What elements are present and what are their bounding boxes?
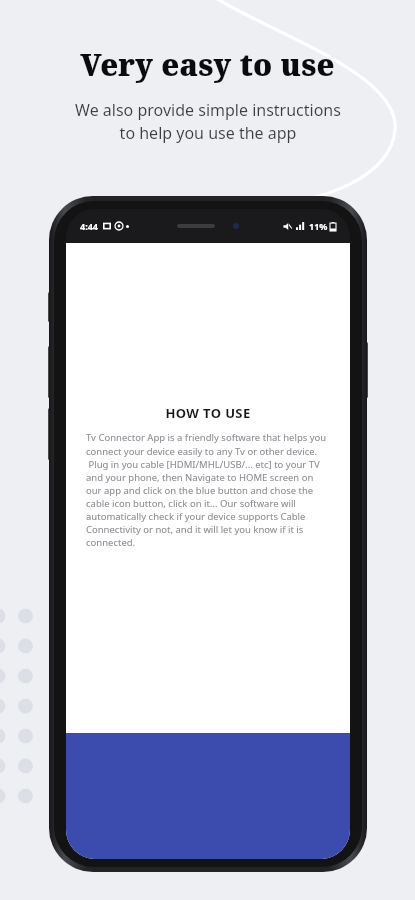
staticText: Tv Connector App is a friendly software … (86, 431, 330, 548)
staticText: Very easy to use (80, 44, 335, 85)
staticText: 4:44 (80, 220, 98, 232)
button[interactable]: HOW TO USE (78, 392, 338, 560)
staticText: 11% (309, 220, 328, 232)
staticText: HOW TO USE (86, 404, 330, 422)
staticText: We also provide simple instructions to h… (75, 99, 341, 144)
